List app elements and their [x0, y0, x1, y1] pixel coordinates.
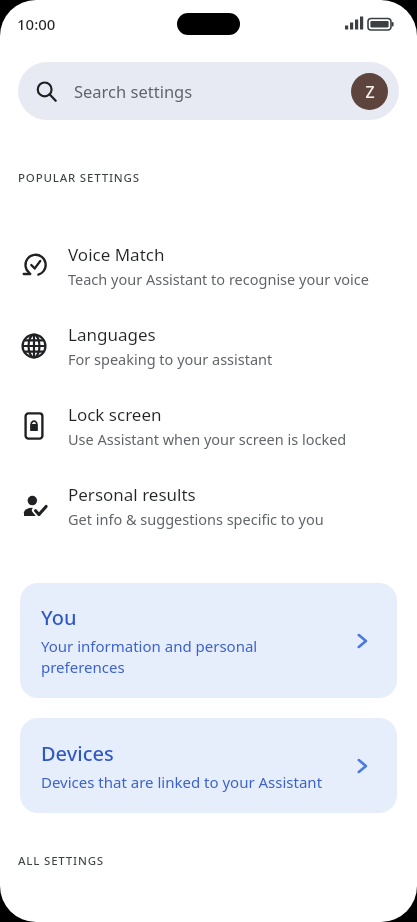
staticText: POPULAR SETTINGS	[18, 170, 140, 186]
button[interactable]: You	[20, 583, 397, 698]
button[interactable]: Voice Match	[0, 232, 417, 300]
button[interactable]: Personal results	[0, 472, 417, 540]
staticText: Devices that are linked to your Assistan…	[41, 772, 323, 792]
button[interactable]: Account	[351, 73, 388, 110]
staticText: You	[41, 604, 77, 631]
staticText: For speaking to your assistant	[68, 349, 273, 369]
button[interactable]: Languages	[0, 312, 417, 380]
staticText: Voice Match	[68, 243, 165, 266]
staticText: Your information and personal preference…	[41, 636, 258, 678]
button[interactable]: Devices	[20, 718, 397, 813]
staticText: Personal results	[68, 483, 196, 506]
staticText: Languages	[68, 323, 156, 346]
button[interactable]: Search settings	[18, 62, 399, 120]
staticText: Get info & suggestions specific to you	[68, 509, 324, 529]
staticText: Z	[365, 81, 375, 103]
staticText: Devices	[41, 740, 114, 767]
staticText: Lock screen	[68, 403, 162, 426]
staticText: Search settings	[74, 80, 193, 102]
staticText: 10:00	[17, 14, 56, 34]
staticText: ALL SETTINGS	[18, 853, 104, 869]
button[interactable]: Lock screen	[0, 392, 417, 460]
staticText: Teach your Assistant to recognise your v…	[68, 269, 369, 289]
staticText: Use Assistant when your screen is locked	[68, 429, 347, 449]
